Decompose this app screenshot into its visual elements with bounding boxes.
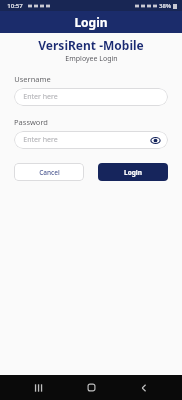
staticText: Enter here bbox=[23, 135, 58, 145]
staticText: Cancel bbox=[39, 168, 60, 177]
button[interactable]: Enter here bbox=[14, 131, 168, 149]
staticText: Login bbox=[74, 14, 108, 30]
button[interactable]: Home bbox=[76, 375, 106, 400]
staticText: VersiRent -Mobile bbox=[38, 37, 144, 53]
button[interactable]: Back bbox=[129, 375, 159, 400]
staticText: Username bbox=[14, 74, 51, 84]
staticText: Enter here bbox=[23, 92, 58, 102]
staticText: 38% bbox=[159, 2, 171, 10]
button[interactable]: Show password bbox=[149, 134, 161, 146]
button[interactable]: Enter here bbox=[14, 88, 168, 106]
staticText: 10:57 bbox=[7, 2, 23, 10]
button[interactable]: Recent apps bbox=[23, 375, 53, 400]
button[interactable]: Login bbox=[98, 163, 168, 181]
staticText: Password bbox=[14, 117, 48, 127]
button[interactable]: Cancel bbox=[14, 163, 84, 181]
staticText: Login bbox=[124, 168, 142, 177]
staticText: Employee Login bbox=[65, 54, 118, 64]
